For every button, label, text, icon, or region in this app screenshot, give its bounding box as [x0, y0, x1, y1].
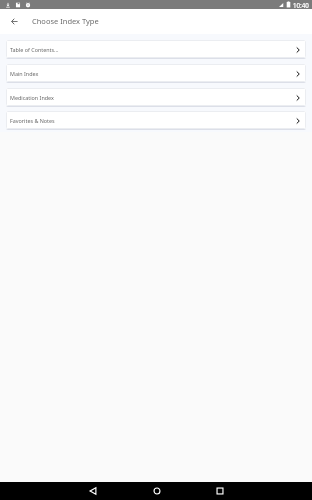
staticText: Table of Contents...	[10, 46, 59, 53]
staticText: Medication Index	[10, 94, 54, 101]
staticText: Favorites & Notes	[10, 117, 55, 124]
button[interactable]: Back	[2, 9, 27, 34]
staticText: Main Index	[10, 70, 39, 77]
button[interactable]: Main Index	[6, 64, 306, 82]
button[interactable]: Table of Contents...	[6, 40, 306, 58]
staticText: 10:40	[293, 1, 309, 9]
staticText: Choose Index Type	[32, 16, 99, 26]
button[interactable]: Favorites & Notes	[6, 111, 306, 129]
button[interactable]: Recent apps	[206, 482, 234, 500]
button[interactable]: Medication Index	[6, 88, 306, 106]
button[interactable]: Home	[143, 482, 171, 500]
button[interactable]: Back	[79, 482, 107, 500]
